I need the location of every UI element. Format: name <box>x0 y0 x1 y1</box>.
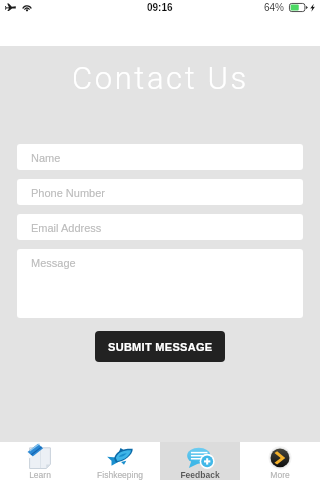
button[interactable]: Name <box>17 144 303 170</box>
button[interactable]: SUBMIT MESSAGE <box>95 331 225 362</box>
staticText: SUBMIT MESSAGE <box>108 341 213 353</box>
button[interactable]: Learn <box>0 442 80 480</box>
button[interactable]: Fishkeeping <box>80 442 160 480</box>
staticText: 09:16 <box>147 2 173 13</box>
staticText: Email Address <box>31 222 102 234</box>
staticText: Learn <box>29 470 51 479</box>
staticText: Contact Us <box>72 60 249 94</box>
staticText: More <box>270 470 290 479</box>
staticText: Message <box>31 257 76 269</box>
staticText: Name <box>31 152 61 164</box>
button[interactable]: Email Address <box>17 214 303 240</box>
button[interactable]: Feedback <box>160 442 240 480</box>
button[interactable]: Message <box>17 249 303 318</box>
button[interactable]: Phone Number <box>17 179 303 205</box>
button[interactable]: More <box>240 442 320 480</box>
staticText: Feedback <box>180 470 220 479</box>
staticText: Fishkeeping <box>97 470 143 479</box>
staticText: 64% <box>264 2 285 13</box>
staticText: Phone Number <box>31 187 105 199</box>
